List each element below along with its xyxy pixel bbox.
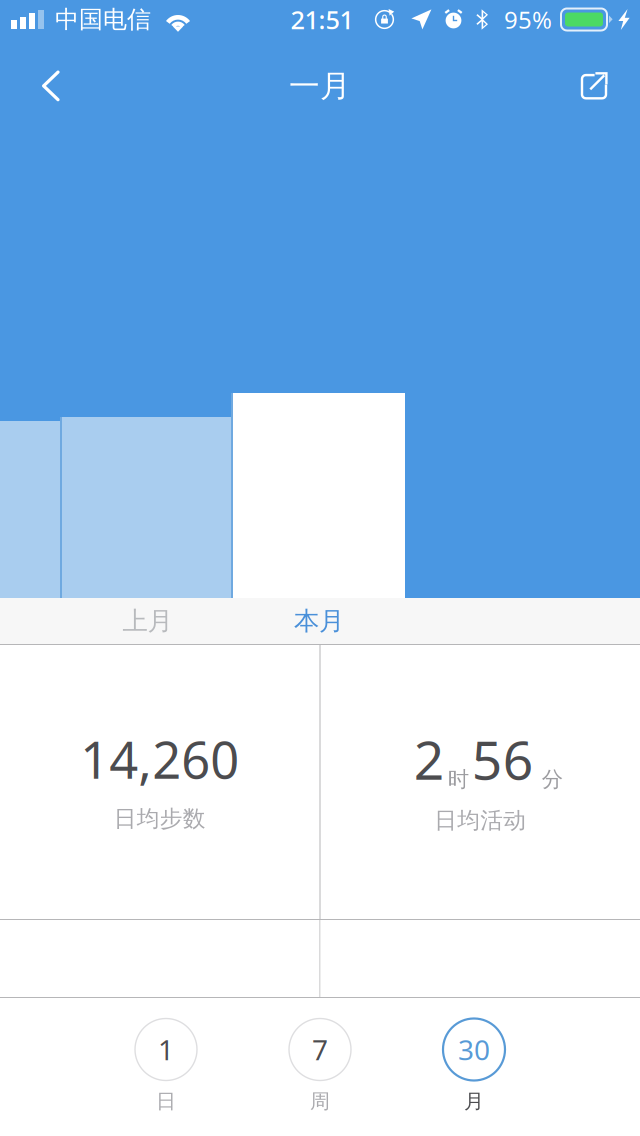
button[interactable]: 上月 — [62, 598, 233, 644]
button[interactable]: 1 — [134, 1018, 197, 1114]
staticText: 21:51 — [290, 3, 353, 36]
staticText: 一月 — [289, 67, 351, 105]
button[interactable]: Back — [11, 46, 91, 126]
staticText: 日均步数 — [114, 805, 206, 832]
button[interactable]: 30 — [442, 1018, 505, 1114]
staticText: 14,260 — [80, 725, 239, 793]
staticText: 日均活动 — [434, 806, 526, 834]
staticText: 1 — [158, 1031, 174, 1068]
button[interactable]: 本月 — [233, 598, 405, 644]
staticText: 上月 — [122, 605, 172, 636]
staticText: 95% — [504, 4, 552, 35]
staticText: 月 — [464, 1089, 484, 1114]
button[interactable]: 7 — [288, 1018, 351, 1114]
button[interactable]: Share — [554, 46, 634, 126]
staticText: 30 — [458, 1031, 490, 1068]
staticText: 7 — [312, 1031, 328, 1068]
staticText: 时 — [448, 766, 469, 792]
staticText: 日 — [156, 1089, 176, 1114]
staticText: 中国电信 — [55, 5, 151, 34]
staticText: 周 — [310, 1089, 330, 1114]
staticText: 56 — [472, 724, 534, 794]
staticText: 本月 — [294, 605, 344, 636]
staticText: 2 — [414, 724, 445, 794]
staticText: 分 — [542, 766, 563, 792]
